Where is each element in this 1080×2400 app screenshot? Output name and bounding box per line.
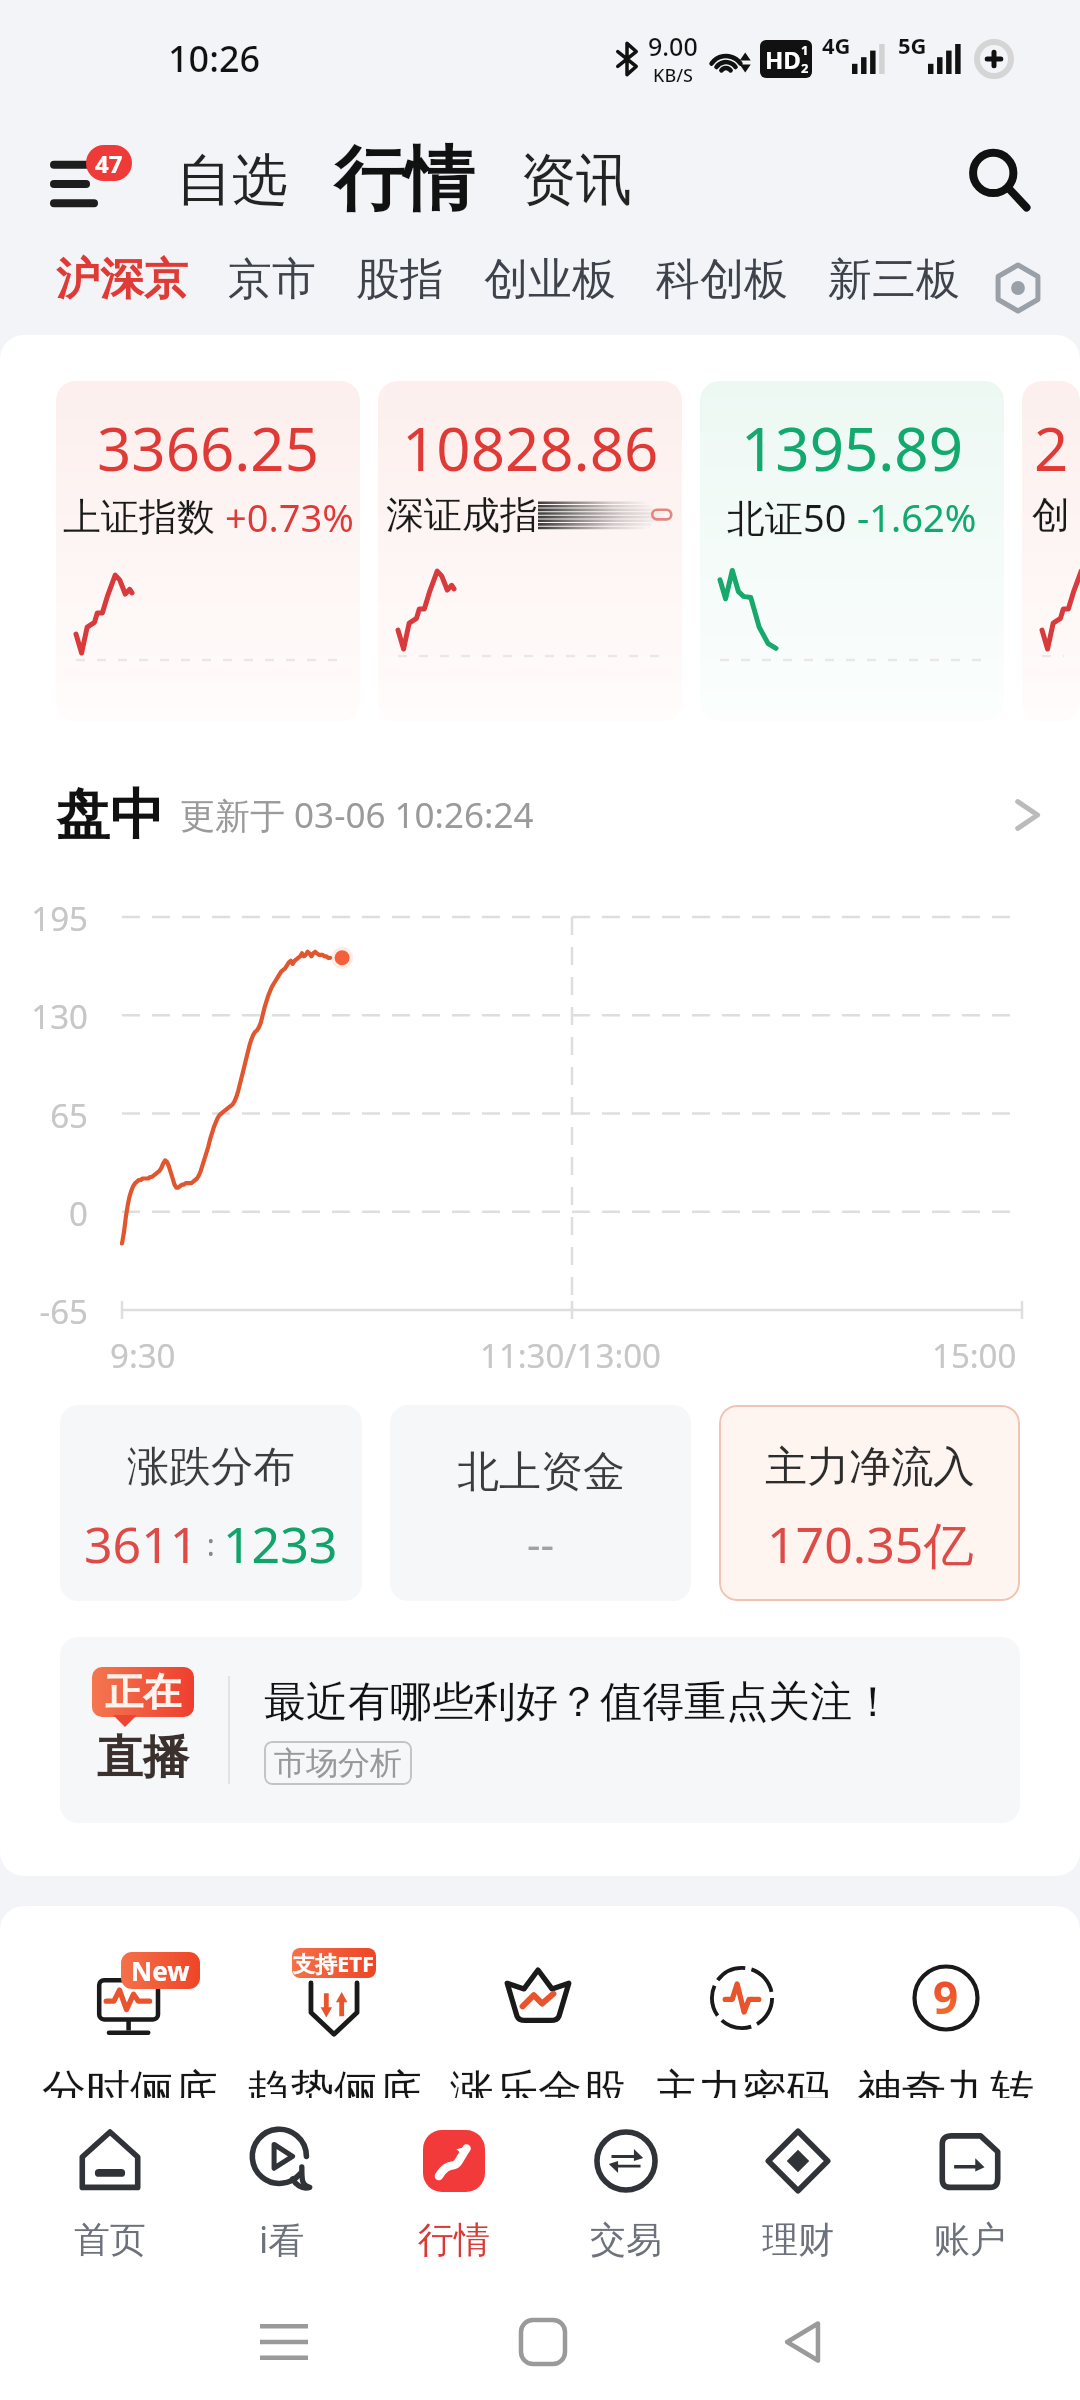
button[interactable]: Menu xyxy=(38,137,148,223)
staticText: 3366.25 xyxy=(97,407,319,489)
staticText: 资讯 xyxy=(520,145,632,216)
button[interactable]: 正在 xyxy=(60,1637,1020,1823)
staticText: 新三板 xyxy=(828,252,960,307)
staticText: 股指 xyxy=(356,252,444,307)
staticText: : xyxy=(199,1524,223,1565)
staticText: 更新于 03-06 10:26:24 xyxy=(180,791,534,839)
staticText: 涨乐金股 xyxy=(450,2064,626,2119)
button[interactable]: 创业板 xyxy=(464,240,636,319)
staticText: 京市 xyxy=(228,252,316,307)
button[interactable]: 资讯 xyxy=(514,145,638,216)
staticText: 交易 xyxy=(590,2217,662,2262)
staticText: 1 xyxy=(801,41,809,59)
staticText: +0.73% xyxy=(225,491,354,543)
staticText: 涨跌分布 xyxy=(127,1441,295,1494)
staticText: 自选 xyxy=(176,145,288,216)
staticText: 支持ETF xyxy=(293,1948,375,1978)
button[interactable]: 2 xyxy=(1022,381,1080,721)
button[interactable]: 账户 xyxy=(884,2098,1056,2270)
staticText: 市场分析 xyxy=(274,1743,402,1783)
staticText: 行情 xyxy=(418,2217,490,2262)
button[interactable]: 行情 xyxy=(328,136,480,224)
staticText: 170.35亿 xyxy=(767,1510,974,1578)
staticText: 行情 xyxy=(334,136,474,224)
staticText: 创业板 xyxy=(484,252,616,307)
staticText: 直播 xyxy=(97,1729,189,1787)
staticText: i看 xyxy=(259,2215,305,2264)
staticText: -- xyxy=(527,1515,555,1572)
button[interactable]: 涨跌分布 xyxy=(60,1405,362,1601)
staticText: 10:26 xyxy=(168,34,261,83)
button[interactable]: 自选 xyxy=(170,145,294,216)
button[interactable]: Search xyxy=(954,135,1044,225)
button[interactable]: 9 xyxy=(844,1960,1048,2119)
button[interactable]: Back xyxy=(743,2282,863,2400)
button[interactable]: 股指 xyxy=(336,240,464,319)
staticText: 正在 xyxy=(105,1668,181,1716)
staticText: 65 xyxy=(0,1093,88,1138)
staticText: 创 xyxy=(1032,491,1070,539)
staticText: 10828.86 xyxy=(402,407,659,489)
staticText: 主力净流入 xyxy=(765,1441,975,1494)
staticText: 5G xyxy=(898,30,927,60)
button[interactable]: 涨乐金股 xyxy=(436,1960,640,2119)
button[interactable]: 主力净流入 xyxy=(719,1405,1020,1601)
staticText: 11:30/13:00 xyxy=(480,1333,661,1378)
button[interactable]: 10828.86 xyxy=(378,381,682,721)
staticText: 理财 xyxy=(762,2217,834,2262)
staticText: 9.00 xyxy=(648,29,698,63)
staticText: 15:00 xyxy=(932,1333,1017,1378)
staticText: 科创板 xyxy=(656,252,788,307)
staticText: 130 xyxy=(0,994,88,1039)
staticText: KB/S xyxy=(653,63,693,88)
button[interactable]: 首页 xyxy=(24,2098,196,2270)
staticText: 2 xyxy=(1034,407,1069,489)
button[interactable]: 京市 xyxy=(208,240,336,319)
button[interactable]: 新三板 xyxy=(808,240,980,319)
staticText: 深证成指 xyxy=(386,491,538,539)
staticText: HD xyxy=(765,43,801,76)
staticText: 首页 xyxy=(74,2217,146,2262)
button[interactable]: 支持ETF xyxy=(232,1960,436,2119)
staticText: 北证50 xyxy=(727,491,847,543)
button[interactable]: New xyxy=(28,1960,232,2119)
staticText: 47 xyxy=(95,147,123,180)
staticText: -65 xyxy=(0,1289,88,1334)
button[interactable]: 行情 xyxy=(368,2098,540,2270)
button[interactable]: 理财 xyxy=(712,2098,884,2270)
staticText: 主力密码 xyxy=(654,2064,830,2119)
staticText: 0 xyxy=(0,1191,88,1236)
staticText: 1395.89 xyxy=(741,407,963,489)
staticText: 北上资金 xyxy=(457,1446,625,1499)
button[interactable]: Settings xyxy=(980,250,1056,326)
staticText: -1.62% xyxy=(857,491,977,543)
button[interactable]: 科创板 xyxy=(636,240,808,319)
staticText: 上证指数 xyxy=(63,493,215,541)
button[interactable]: 交易 xyxy=(540,2098,712,2270)
staticText: 趋势俪底 xyxy=(246,2064,422,2119)
button[interactable]: 3366.25 xyxy=(56,381,360,721)
staticText: 4G xyxy=(822,30,851,60)
staticText: 账户 xyxy=(934,2217,1006,2262)
staticText: 3611 xyxy=(84,1510,199,1578)
staticText: 最近有哪些利好？值得重点关注！ xyxy=(264,1676,894,1729)
staticText: 盘中 xyxy=(56,781,164,849)
button[interactable]: 主力密码 xyxy=(640,1960,844,2119)
staticText: 9:30 xyxy=(110,1333,176,1378)
staticText: 195 xyxy=(0,896,88,941)
button[interactable]: i看 xyxy=(196,2098,368,2270)
button[interactable]: 沪深京 xyxy=(36,240,208,319)
staticText: 神奇九转 xyxy=(858,2064,1034,2119)
staticText: 1233 xyxy=(223,1510,338,1578)
button[interactable]: 1395.89 xyxy=(700,381,1004,721)
button[interactable]: 盘中 xyxy=(56,775,1044,855)
button[interactable]: Recent apps xyxy=(224,2282,344,2400)
staticText: 沪深京 xyxy=(56,252,188,307)
staticText: 2 xyxy=(801,59,809,77)
staticText: New xyxy=(131,1953,190,1988)
staticText: 分时俪底 xyxy=(42,2064,218,2119)
button[interactable]: 北上资金 xyxy=(390,1405,691,1601)
button[interactable]: Home xyxy=(483,2282,603,2400)
staticText: 9 xyxy=(933,1967,959,2027)
